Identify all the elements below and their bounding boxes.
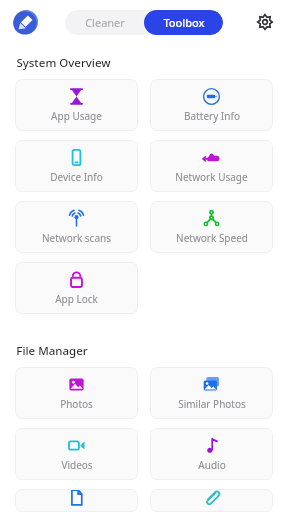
staticText: Battery Info [184, 109, 240, 123]
staticText: Documents [50, 510, 104, 512]
button[interactable]: Photos [15, 367, 138, 419]
button[interactable]: Network Usage [150, 140, 273, 192]
button[interactable]: App Usage [15, 79, 138, 131]
staticText: Photos [60, 397, 93, 411]
button[interactable]: Battery Info [150, 79, 273, 131]
button[interactable]: Network Speed [150, 201, 273, 253]
button[interactable]: Toolbox [144, 10, 223, 35]
button[interactable]: Documents [15, 489, 138, 512]
button[interactable]: Other Files [150, 489, 273, 512]
button[interactable]: App logo [14, 10, 38, 34]
button[interactable]: Network scans [15, 201, 138, 253]
staticText: Network Usage [175, 170, 248, 184]
staticText: App Usage [51, 109, 102, 123]
staticText: Cleaner [85, 15, 125, 30]
staticText: Network Speed [176, 231, 248, 245]
staticText: Network scans [42, 231, 111, 245]
staticText: Videos [61, 458, 93, 472]
button[interactable]: Similar Photos [150, 367, 273, 419]
staticText: Device Info [50, 170, 103, 184]
button[interactable]: Device Info [15, 140, 138, 192]
staticText: Toolbox [163, 15, 205, 30]
staticText: Audio [198, 458, 226, 472]
staticText: System Overview [16, 55, 111, 71]
button[interactable]: Cleaner [65, 10, 144, 35]
button[interactable]: App Lock [15, 262, 138, 314]
button[interactable]: Videos [15, 428, 138, 480]
button[interactable]: Settings [254, 11, 276, 33]
staticText: File Manager [16, 343, 88, 359]
staticText: Similar Photos [178, 397, 246, 411]
button[interactable]: Audio [150, 428, 273, 480]
staticText: App Lock [55, 292, 98, 306]
staticText: Other Files [186, 510, 237, 512]
